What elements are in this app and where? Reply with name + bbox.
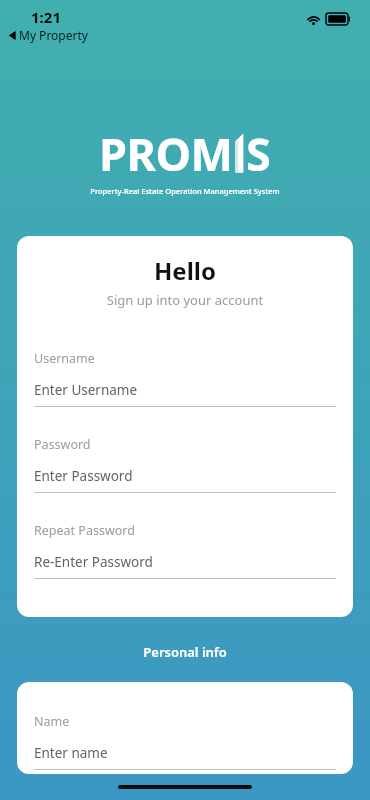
button[interactable]: Re-Enter Password [34,553,336,579]
staticText: Personal info [0,643,370,661]
staticText: Username [34,350,95,367]
staticText: Repeat Password [34,522,135,539]
staticText: Password [34,436,91,453]
button[interactable]: Enter name [34,744,336,770]
button[interactable]: Back to My Property [8,27,88,43]
staticText: S [246,123,271,184]
staticText: PROM [99,123,233,184]
staticText: Sign up into your account [34,291,336,309]
staticText: Name [34,713,70,730]
staticText: 1:21 [31,7,61,27]
button[interactable]: Enter Password [34,467,336,493]
staticText: My Property [19,27,88,43]
staticText: Hello [34,254,336,287]
staticText: Re-Enter Password [34,553,153,571]
staticText: Property-Real Estate Operation Managemen… [90,186,280,196]
button[interactable]: Enter Username [34,381,336,407]
staticText: Enter Username [34,381,138,399]
staticText: Enter name [34,744,108,762]
staticText: Enter Password [34,467,133,485]
